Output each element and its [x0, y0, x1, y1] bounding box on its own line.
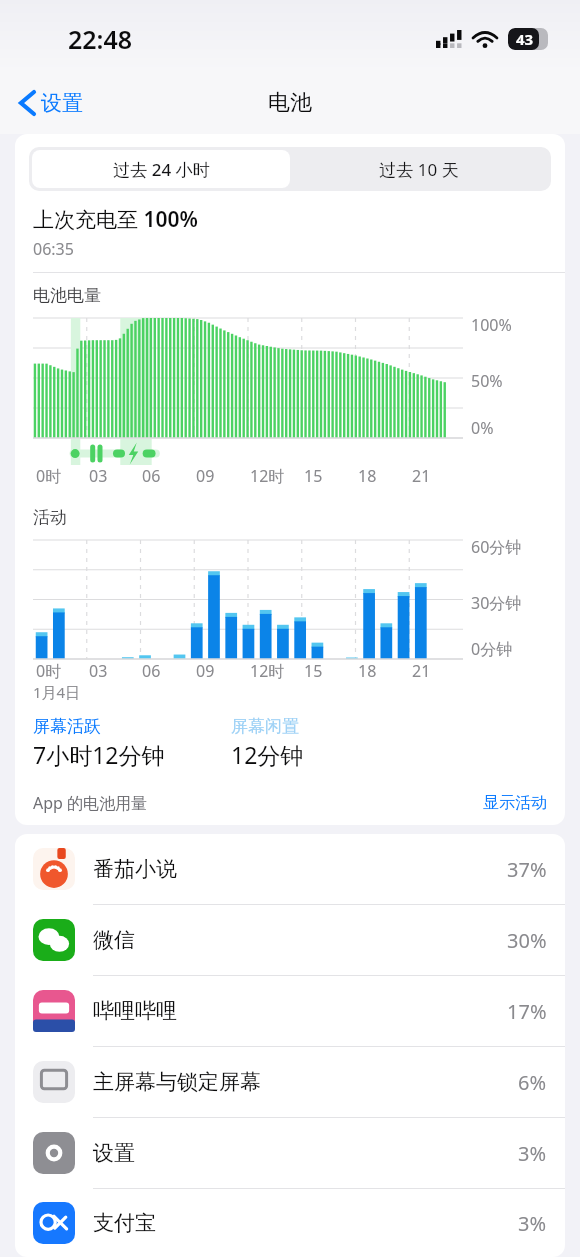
- staticText: 09: [196, 465, 215, 487]
- staticText: 43: [516, 29, 534, 49]
- staticText: 50%: [471, 370, 503, 392]
- staticText: 30分钟: [471, 592, 522, 614]
- button[interactable]: 番茄小说: [15, 834, 565, 905]
- staticText: 60分钟: [471, 536, 522, 558]
- staticText: 12时: [250, 465, 285, 487]
- staticText: 设置: [93, 1140, 135, 1166]
- staticText: 06: [142, 660, 161, 682]
- staticText: 3%: [518, 1140, 547, 1167]
- button[interactable]: 支付宝: [15, 1189, 565, 1257]
- staticText: 37%: [507, 856, 547, 883]
- staticText: 03: [89, 660, 108, 682]
- staticText: 主屏幕与锁定屏幕: [93, 1069, 261, 1095]
- staticText: 18: [358, 465, 377, 487]
- staticText: 0时: [36, 465, 62, 487]
- staticText: 06: [142, 465, 161, 487]
- staticText: 21: [412, 465, 431, 487]
- staticText: 0分钟: [471, 638, 513, 660]
- staticText: 设置: [41, 90, 83, 116]
- staticText: 22:48: [68, 22, 133, 56]
- staticText: 3%: [518, 1210, 547, 1237]
- staticText: 番茄小说: [93, 856, 177, 882]
- button[interactable]: 微信: [15, 905, 565, 976]
- staticText: 过去 24 小时: [113, 158, 210, 181]
- staticText: 7小时12分钟: [33, 739, 165, 770]
- staticText: 30%: [507, 927, 547, 954]
- staticText: 支付宝: [93, 1210, 156, 1236]
- staticText: 15: [304, 660, 323, 682]
- staticText: 过去 10 天: [379, 158, 459, 181]
- staticText: 17%: [507, 998, 547, 1025]
- staticText: 6%: [518, 1069, 547, 1096]
- staticText: 15: [304, 465, 323, 487]
- staticText: 1月4日: [33, 682, 81, 702]
- button[interactable]: 显示活动: [483, 793, 547, 813]
- button[interactable]: 过去 10 天: [290, 150, 548, 188]
- staticText: 09: [196, 660, 215, 682]
- staticText: 12分钟: [231, 739, 304, 770]
- staticText: 06:35: [33, 238, 74, 260]
- staticText: 活动: [33, 507, 67, 528]
- staticText: App 的电池用量: [33, 792, 148, 814]
- staticText: 电池电量: [33, 285, 101, 306]
- button[interactable]: 过去 24 小时: [32, 150, 290, 188]
- staticText: 0时: [36, 660, 62, 682]
- staticText: 12时: [250, 660, 285, 682]
- button[interactable]: 屏幕活跃: [33, 716, 101, 737]
- staticText: 03: [89, 465, 108, 487]
- staticText: 哔哩哔哩: [93, 998, 177, 1024]
- button[interactable]: 屏幕闲置: [231, 716, 299, 737]
- button[interactable]: 设置: [15, 1118, 565, 1189]
- staticText: 21: [412, 660, 431, 682]
- staticText: 0%: [471, 417, 494, 439]
- staticText: 电池: [268, 89, 312, 117]
- staticText: 微信: [93, 927, 135, 953]
- button[interactable]: 哔哩哔哩: [15, 976, 565, 1047]
- button[interactable]: 主屏幕与锁定屏幕: [15, 1047, 565, 1118]
- button[interactable]: 设置: [14, 84, 89, 122]
- staticText: 100%: [471, 314, 512, 336]
- staticText: 上次充电至 100%: [33, 205, 198, 234]
- staticText: 18: [358, 660, 377, 682]
